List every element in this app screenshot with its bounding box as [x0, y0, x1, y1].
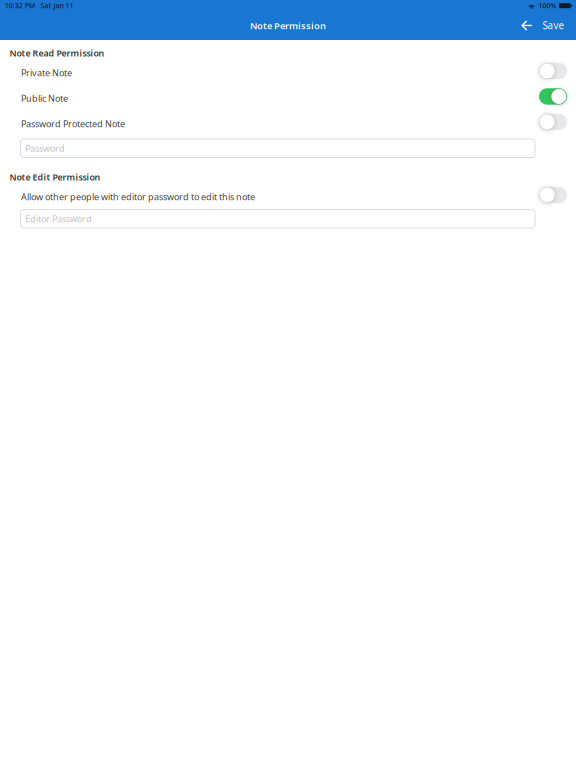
- staticText: Note Edit Permission: [10, 171, 101, 183]
- staticText: Save: [542, 19, 564, 32]
- staticText: Password Protected Note: [21, 118, 125, 130]
- staticText: 10:32 PM: [5, 1, 35, 10]
- staticText: Note Permission: [250, 19, 326, 32]
- button[interactable]: Public Note: [0, 85, 576, 111]
- staticText: Private Note: [21, 67, 72, 79]
- staticText: Public Note: [21, 92, 68, 104]
- button[interactable]: Back: [516, 15, 537, 36]
- staticText: 100%: [538, 1, 556, 10]
- button[interactable]: Editor Password: [20, 209, 535, 228]
- staticText: Password: [25, 142, 65, 154]
- button[interactable]: Save: [537, 14, 570, 37]
- staticText: Sat Jan 11: [40, 1, 73, 10]
- button[interactable]: Private Note: [0, 60, 576, 85]
- button[interactable]: Password Protected Note: [0, 111, 576, 136]
- button[interactable]: Allow other people with editor password …: [0, 184, 576, 209]
- staticText: Note Read Permission: [10, 47, 105, 59]
- button[interactable]: Password: [20, 139, 535, 157]
- staticText: Editor Password: [25, 213, 92, 225]
- staticText: Allow other people with editor password …: [21, 191, 255, 203]
